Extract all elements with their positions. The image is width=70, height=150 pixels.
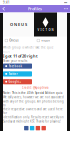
button[interactable]: Back — [0, 5, 8, 12]
button[interactable]: Share by email — [41, 126, 46, 130]
staticText: We tally votes, however we are not assoc… — [3, 95, 64, 99]
staticText: Victon — [41, 39, 50, 42]
staticText: 9:41 — [3, 1, 10, 4]
staticText: with any of the groups. All photos belon… — [3, 100, 64, 107]
staticText: ●●● — [64, 2, 67, 3]
staticText: identification only. Results reset weekl… — [3, 115, 64, 119]
staticText: Share your results — [3, 59, 27, 63]
staticText: I got 11 of 20 right — [3, 53, 38, 59]
button[interactable]: Oneus — [3, 36, 35, 44]
staticText: RESULTS — [3, 51, 10, 53]
button[interactable]: More options — [62, 5, 70, 12]
button[interactable]: Google+ — [3, 79, 32, 84]
staticText: Credit: @kpoptrivia — [22, 86, 48, 89]
staticText: Google+ — [9, 80, 22, 83]
staticText: Twitter — [9, 72, 18, 76]
staticText: Sunday at midnight KST. Thanks for playi… — [3, 120, 61, 123]
staticText: O N E U S — [10, 22, 27, 27]
staticText: Which group is which? Take the quiz — [3, 46, 53, 49]
staticText: their respective owners and are used her… — [3, 108, 63, 115]
button[interactable]: Share on Facebook — [24, 126, 28, 130]
staticText: Note: This is the 40th Special Edition q… — [3, 91, 63, 95]
button[interactable]: Victon — [35, 36, 67, 44]
button[interactable]: Twitter — [3, 71, 32, 76]
staticText: Facebook — [9, 64, 23, 68]
staticText: Oneus — [9, 39, 18, 42]
button[interactable]: Facebook — [3, 63, 32, 69]
staticText: V I C T O N — [37, 28, 53, 32]
staticText: Profiles — [28, 6, 42, 11]
